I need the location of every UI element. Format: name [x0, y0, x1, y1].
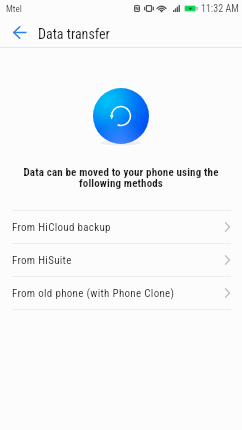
staticText: From HiCloud backup: [12, 221, 225, 234]
staticText: Mtel: [6, 4, 22, 15]
button[interactable]: Back: [6, 19, 33, 45]
button[interactable]: From HiSuite: [0, 244, 242, 276]
staticText: 11:32 AM: [201, 3, 239, 15]
staticText: Data can be moved to your phone using th…: [0, 166, 242, 189]
button[interactable]: From old phone (with Phone Clone): [0, 277, 242, 309]
staticText: From HiSuite: [12, 254, 225, 267]
staticText: From old phone (with Phone Clone): [12, 287, 225, 300]
button[interactable]: From HiCloud backup: [0, 211, 242, 243]
staticText: Data transfer: [38, 26, 110, 42]
